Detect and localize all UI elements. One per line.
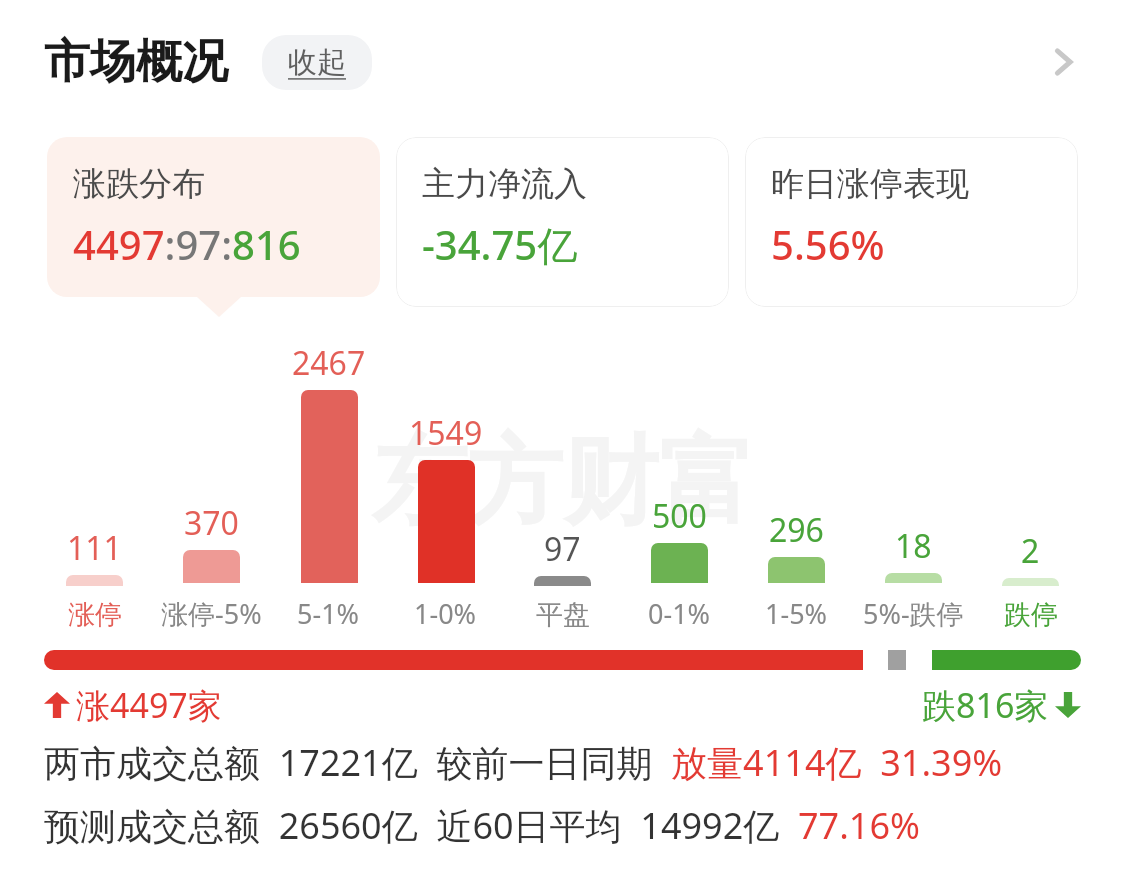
staticText: 2467 xyxy=(292,341,366,385)
staticText: 296 xyxy=(769,508,824,552)
staticText: 1-0% xyxy=(414,595,477,632)
staticText: 111 xyxy=(67,526,122,570)
button[interactable]: 主力净流入 xyxy=(396,137,729,307)
button[interactable]: 涨跌分布 xyxy=(47,137,380,297)
staticText: 主力净流入 xyxy=(422,163,587,205)
staticText: 昨日涨停表现 xyxy=(771,163,969,205)
staticText: 跌停 xyxy=(1004,598,1058,632)
button[interactable]: 收起 xyxy=(262,35,372,90)
staticText: 市场概况 xyxy=(44,33,228,91)
staticText: 1549 xyxy=(409,411,483,455)
staticText: 18 xyxy=(895,524,932,568)
staticText: 1-5% xyxy=(765,595,828,632)
staticText: 涨4497家 xyxy=(76,682,222,728)
staticText: 0-1% xyxy=(648,595,711,632)
staticText: 5.56% xyxy=(771,217,885,271)
staticText: 2 xyxy=(1021,529,1040,573)
staticText: 5-1% xyxy=(297,595,360,632)
staticText: 97 xyxy=(544,527,581,571)
staticText: 4497:97:816 xyxy=(73,217,301,271)
staticText: 涨停 xyxy=(68,598,122,632)
staticText: 跌816家 xyxy=(922,682,1049,728)
button[interactable]: More xyxy=(1035,34,1091,90)
staticText: 涨停-5% xyxy=(161,595,262,632)
button[interactable]: 昨日涨停表现 xyxy=(745,137,1078,307)
staticText: 5%-跌停 xyxy=(863,595,964,632)
staticText: -34.75亿 xyxy=(422,217,578,272)
staticText: 两市成交总额 17221亿 较前一日同期 放量4114亿 31.39% xyxy=(44,738,1003,787)
staticText: 平盘 xyxy=(536,598,590,632)
staticText: 涨跌分布 xyxy=(73,163,205,205)
staticText: 500 xyxy=(652,494,707,538)
staticText: 370 xyxy=(184,501,239,545)
staticText: 收起 xyxy=(288,44,346,81)
staticText: 东方财富 xyxy=(371,422,755,543)
staticText: 预测成交总额 26560亿 近60日平均 14992亿 77.16% xyxy=(44,801,920,850)
